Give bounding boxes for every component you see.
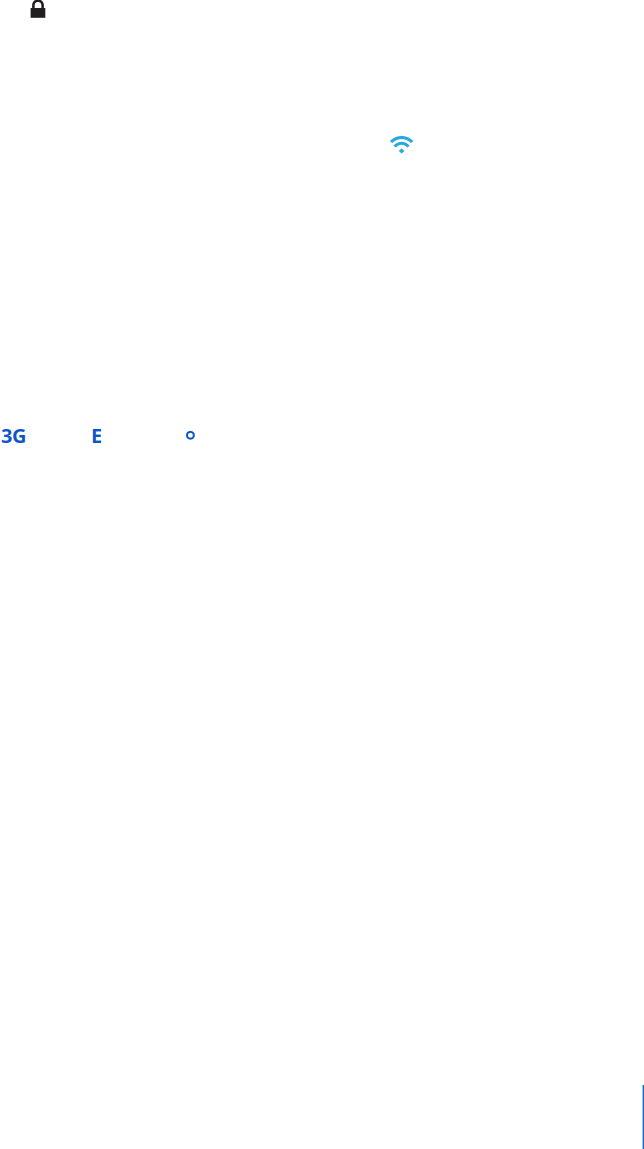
button[interactable]: 3G — [1, 422, 26, 449]
staticText: E — [91, 422, 102, 449]
button[interactable]: E — [91, 422, 102, 449]
staticText: 3G — [1, 422, 26, 449]
button[interactable]: Wi-Fi — [391, 136, 412, 152]
button[interactable]: Locked — [31, 0, 45, 18]
button[interactable]: No service — [187, 432, 194, 439]
